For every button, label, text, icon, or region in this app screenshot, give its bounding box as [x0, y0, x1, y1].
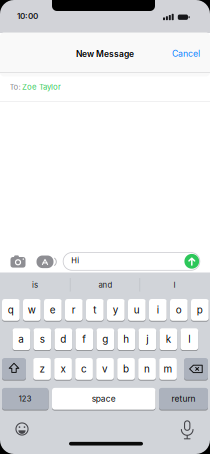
button[interactable]: k [159, 327, 177, 351]
staticText: y [113, 304, 119, 316]
button[interactable]: p [191, 298, 209, 322]
staticText: return [171, 394, 195, 404]
button[interactable]: b [117, 357, 135, 381]
staticText: I [173, 280, 175, 289]
staticText: z [39, 363, 44, 375]
staticText: j [146, 333, 148, 345]
button[interactable]: space [52, 387, 155, 411]
button[interactable]: c [75, 357, 93, 381]
button[interactable]: v [96, 357, 114, 381]
button[interactable] [35, 254, 57, 269]
staticText: d [60, 333, 66, 345]
staticText: Hi [71, 256, 79, 265]
button[interactable]: and [72, 275, 138, 295]
staticText: x [60, 363, 65, 375]
staticText: is [32, 280, 38, 289]
staticText: f [82, 333, 86, 345]
button[interactable]: 123 [2, 387, 48, 411]
button[interactable] [13, 420, 30, 437]
button[interactable]: u [128, 298, 146, 322]
button[interactable]: is [2, 275, 68, 295]
button[interactable] [63, 252, 200, 271]
button[interactable]: j [138, 327, 156, 351]
button[interactable] [9, 255, 26, 270]
staticText: s [40, 333, 45, 345]
staticText: p [197, 304, 203, 316]
button[interactable]: i [149, 298, 167, 322]
button[interactable]: g [96, 327, 114, 351]
button[interactable] [2, 357, 26, 381]
button[interactable] [184, 254, 199, 269]
staticText: and [98, 280, 112, 289]
staticText: c [81, 363, 87, 375]
button[interactable]: m [159, 357, 177, 381]
button[interactable]: return [159, 387, 208, 411]
staticText: h [123, 333, 129, 345]
button[interactable]: q [2, 298, 20, 322]
button[interactable]: I [141, 275, 207, 295]
button[interactable]: e [44, 298, 62, 322]
staticText: New Message [76, 49, 134, 59]
button[interactable]: s [33, 327, 51, 351]
button[interactable]: To: [0, 73, 210, 101]
staticText: 10:00 [17, 11, 38, 21]
staticText: l [188, 333, 190, 345]
staticText: i [157, 304, 159, 316]
staticText: Zoe Taylor [22, 82, 61, 92]
button[interactable]: f [75, 327, 93, 351]
staticText: Cancel [172, 48, 200, 59]
staticText: To: [10, 82, 21, 92]
button[interactable]: l [180, 327, 198, 351]
staticText: n [144, 363, 150, 375]
staticText: w [28, 304, 36, 316]
staticText: t [93, 304, 96, 316]
button[interactable]: d [54, 327, 72, 351]
staticText: b [123, 363, 129, 375]
button[interactable]: t [86, 298, 104, 322]
button[interactable]: o [170, 298, 188, 322]
button[interactable]: w [23, 298, 41, 322]
button[interactable]: x [54, 357, 72, 381]
staticText: o [176, 304, 182, 316]
button[interactable]: Cancel [172, 48, 200, 59]
button[interactable]: r [65, 298, 83, 322]
staticText: u [134, 304, 140, 316]
staticText: g [102, 333, 108, 345]
staticText: v [102, 363, 108, 375]
staticText: 123 [19, 394, 32, 403]
button[interactable]: y [107, 298, 125, 322]
button[interactable]: z [33, 357, 51, 381]
staticText: a [18, 333, 24, 345]
staticText: m [164, 363, 173, 375]
staticText: e [50, 304, 56, 316]
staticText: space [92, 394, 116, 404]
button[interactable]: n [138, 357, 156, 381]
staticText: k [166, 333, 171, 345]
staticText: r [72, 304, 76, 316]
button[interactable]: a [12, 327, 30, 351]
staticText: q [8, 304, 14, 316]
button[interactable] [184, 357, 208, 381]
button[interactable] [179, 420, 196, 439]
button[interactable]: h [117, 327, 135, 351]
